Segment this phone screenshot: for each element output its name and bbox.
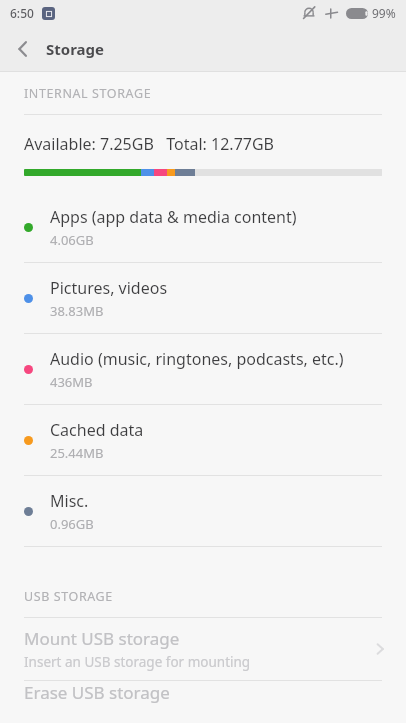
staticText: Storage: [46, 39, 104, 59]
button[interactable]: Pictures, videos: [0, 263, 406, 333]
staticText: Mount USB storage: [24, 627, 180, 650]
staticText: Audio (music, ringtones, podcasts, etc.): [50, 348, 344, 370]
button[interactable]: Audio (music, ringtones, podcasts, etc.): [0, 334, 406, 404]
staticText: 0.96GB: [50, 515, 94, 533]
button[interactable]: Misc.: [0, 476, 406, 546]
button[interactable]: Cached data: [0, 405, 406, 475]
button[interactable]: Erase USB storage: [0, 681, 406, 721]
staticText: INTERNAL STORAGE: [24, 85, 152, 102]
staticText: Apps (app data & media content): [50, 206, 297, 228]
staticText: Misc.: [50, 490, 89, 512]
button[interactable]: Apps (app data & media content): [0, 192, 406, 262]
button[interactable]: Mount USB storage: [0, 618, 406, 680]
staticText: 6:50: [10, 5, 34, 21]
staticText: Available: 7.25GB Total: 12.77GB: [24, 133, 275, 155]
staticText: 4.06GB: [50, 231, 94, 249]
staticText: 436MB: [50, 373, 93, 391]
button[interactable]: Back: [0, 26, 46, 72]
staticText: 25.44MB: [50, 444, 104, 462]
staticText: Pictures, videos: [50, 277, 168, 299]
staticText: 38.83MB: [50, 302, 104, 320]
staticText: Erase USB storage: [24, 681, 170, 704]
staticText: USB STORAGE: [24, 588, 113, 605]
staticText: Insert an USB storage for mounting: [24, 653, 251, 671]
staticText: 99%: [372, 5, 396, 21]
staticText: Cached data: [50, 419, 144, 441]
